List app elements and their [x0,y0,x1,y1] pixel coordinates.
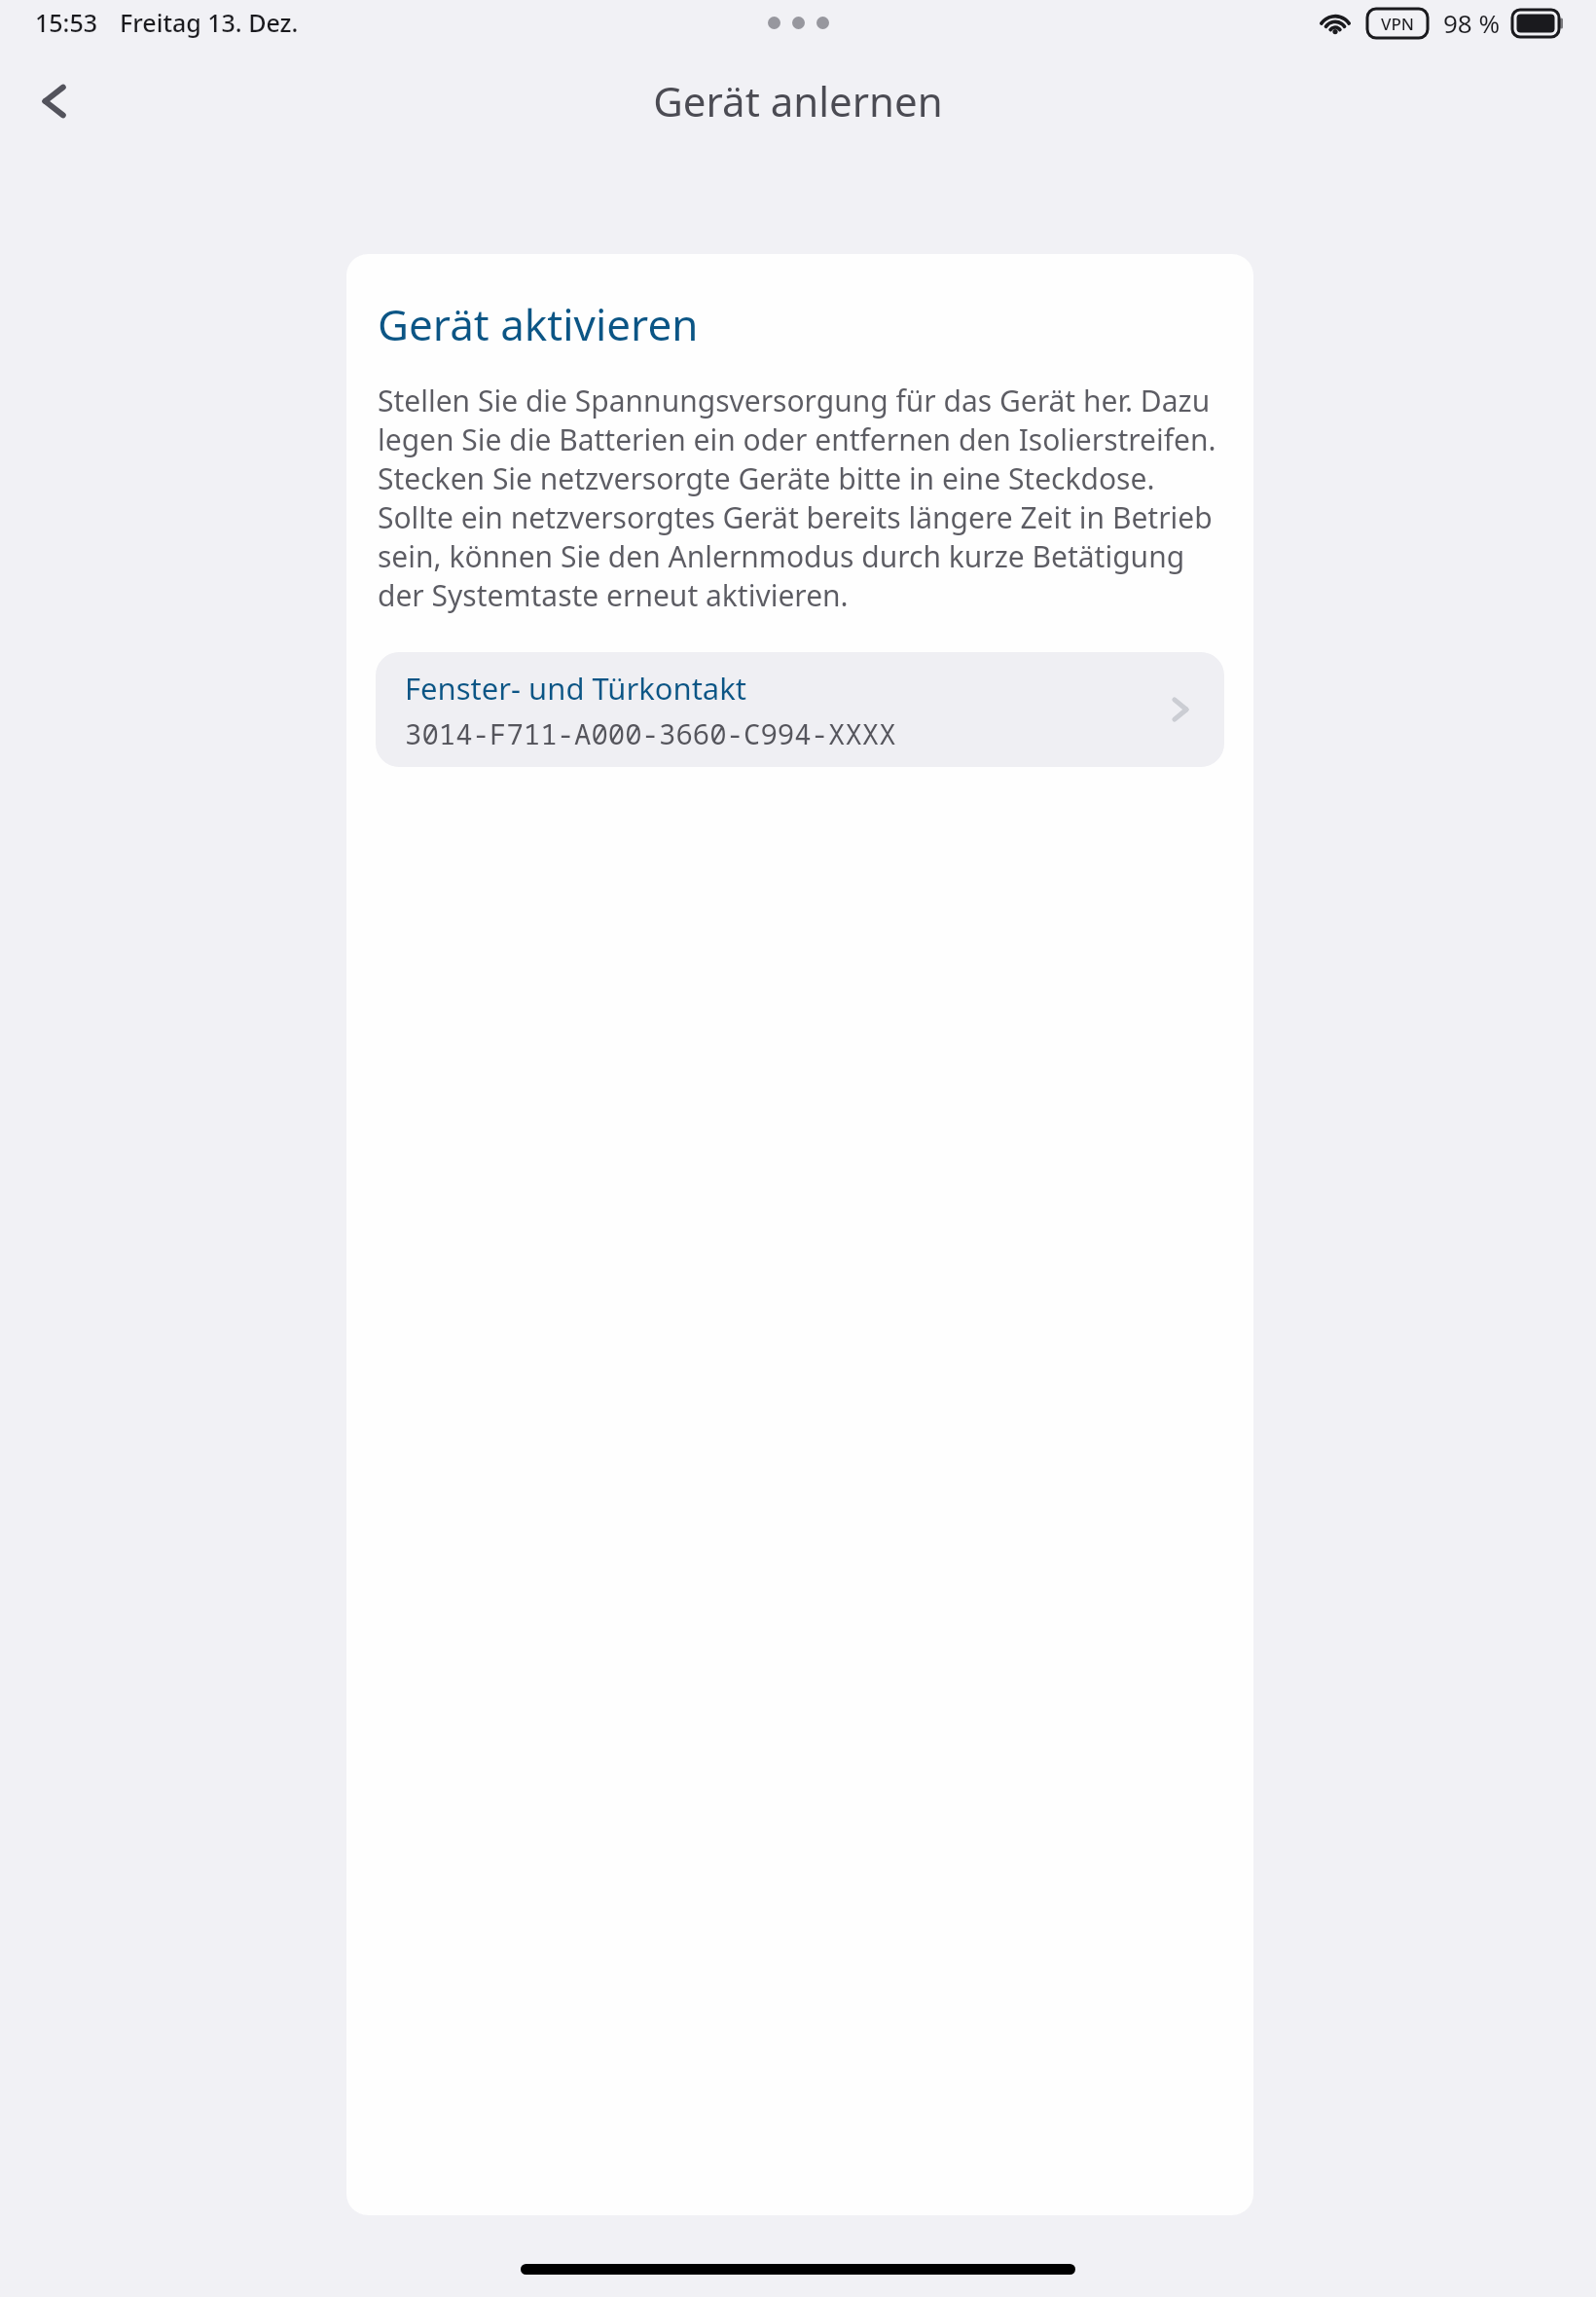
staticText: 15:53 [35,6,98,39]
staticText: Gerät aktivieren [378,295,699,353]
staticText: Fenster- und Türkontakt [405,668,746,709]
button[interactable]: Fenster- und Türkontakt [376,652,1224,767]
staticText: Freitag 13. Dez. [120,6,299,39]
staticText: 3014-F711-A000-3660-C994-XXXX [405,714,896,752]
staticText: Gerät anlernen [653,73,943,128]
staticText: 98 % [1443,6,1501,40]
staticText: Stellen Sie die Spannungsversorgung für … [378,381,1228,615]
button[interactable]: Zurück [12,58,97,144]
staticText: VPN [1381,13,1415,35]
